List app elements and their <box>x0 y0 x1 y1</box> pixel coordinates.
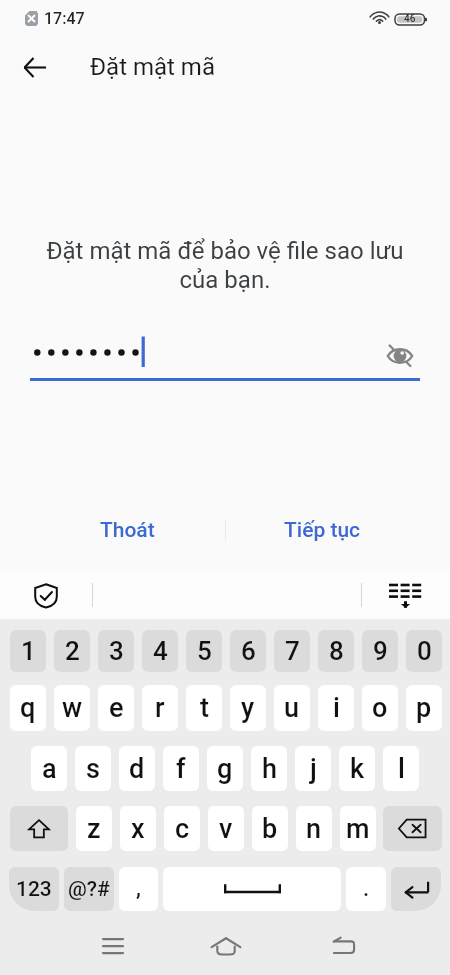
staticText: 6 <box>241 636 256 666</box>
staticText: n <box>306 813 322 845</box>
button[interactable]: 1 <box>10 630 46 672</box>
button[interactable]: Back <box>11 43 59 91</box>
staticText: 5 <box>197 636 212 666</box>
button[interactable]: Recent apps <box>83 916 143 975</box>
button[interactable]: 8 <box>318 630 354 672</box>
button[interactable]: n <box>296 806 332 851</box>
staticText: g <box>217 753 233 785</box>
staticText: p <box>416 692 432 724</box>
button[interactable]: p <box>406 685 442 731</box>
button[interactable]: j <box>295 746 331 791</box>
staticText: 9 <box>373 636 388 666</box>
button[interactable]: f <box>163 746 199 791</box>
button[interactable]: Show password <box>380 335 420 375</box>
button[interactable]: a <box>31 746 67 791</box>
staticText: i <box>333 692 340 724</box>
button[interactable]: Shift <box>10 806 68 851</box>
button[interactable]: c <box>164 806 200 851</box>
staticText: 7 <box>285 636 300 666</box>
staticText: 0 <box>417 636 432 666</box>
button[interactable]: o <box>362 685 398 731</box>
staticText: 8 <box>329 636 344 666</box>
button[interactable]: Secure input <box>28 577 64 613</box>
button[interactable]: h <box>251 746 287 791</box>
button[interactable]: 2 <box>54 630 90 672</box>
staticText: r <box>155 692 165 724</box>
staticText: h <box>262 753 277 785</box>
button[interactable]: t <box>186 685 222 731</box>
staticText: 1 <box>21 636 36 666</box>
staticText: j <box>310 753 317 785</box>
staticText: e <box>109 692 124 724</box>
button[interactable]: 7 <box>274 630 310 672</box>
button[interactable]: m <box>340 806 376 851</box>
staticText: 4 <box>153 636 168 666</box>
staticText: Thoát <box>100 518 155 543</box>
button[interactable]: z <box>76 806 112 851</box>
button[interactable]: v <box>208 806 244 851</box>
button[interactable]: Home <box>196 916 256 975</box>
staticText: q <box>20 692 36 724</box>
button[interactable]: g <box>207 746 243 791</box>
button[interactable]: Back <box>313 916 373 975</box>
button[interactable]: u <box>274 685 310 731</box>
button[interactable]: k <box>339 746 375 791</box>
button[interactable]: Hide keyboard <box>387 577 423 613</box>
button[interactable]: Tiếp tục <box>225 508 450 552</box>
staticText: m <box>346 813 370 845</box>
button[interactable]: q <box>10 685 46 731</box>
button[interactable]: s <box>75 746 111 791</box>
staticText: o <box>372 692 388 724</box>
staticText: 2 <box>65 636 80 666</box>
staticText: a <box>42 753 57 785</box>
button[interactable]: r <box>142 685 178 731</box>
staticText: z <box>87 813 101 845</box>
button[interactable]: 6 <box>230 630 266 672</box>
staticText: . <box>363 876 370 902</box>
staticText: u <box>284 692 300 724</box>
staticText: f <box>176 753 186 785</box>
staticText: @?# <box>68 877 110 902</box>
staticText: 123 <box>16 877 52 902</box>
button[interactable]: l <box>383 746 419 791</box>
button[interactable]: y <box>230 685 266 731</box>
button[interactable]: i <box>318 685 354 731</box>
button[interactable]: e <box>98 685 134 731</box>
button[interactable]: Backspace <box>383 806 442 851</box>
staticText: Đặt mật mã để bảo vệ file sao lưu của bạ… <box>24 237 426 294</box>
button[interactable]: b <box>252 806 288 851</box>
button[interactable]: 5 <box>186 630 222 672</box>
staticText: k <box>350 753 365 785</box>
button[interactable]: w <box>54 685 90 731</box>
staticText: l <box>398 753 405 785</box>
staticText: v <box>219 813 233 845</box>
staticText: 17:47 <box>44 9 85 28</box>
staticText: x <box>131 813 145 845</box>
staticText: y <box>241 692 255 724</box>
button[interactable]: 9 <box>362 630 398 672</box>
staticText: c <box>175 813 190 845</box>
button[interactable]: @?# <box>64 867 114 911</box>
button[interactable]: 0 <box>406 630 442 672</box>
staticText: b <box>262 813 278 845</box>
button[interactable]: d <box>119 746 155 791</box>
staticText: , <box>136 876 141 902</box>
button[interactable]: 3 <box>98 630 134 672</box>
button[interactable]: 123 <box>9 867 59 911</box>
button[interactable]: 4 <box>142 630 178 672</box>
staticText: w <box>62 692 83 724</box>
staticText: Tiếp tục <box>284 518 361 543</box>
staticText: 3 <box>109 636 124 666</box>
staticText: d <box>129 753 145 785</box>
button[interactable]: Thoát <box>0 508 225 552</box>
staticText: s <box>86 753 100 785</box>
button[interactable]: Space <box>163 867 341 911</box>
button[interactable]: . <box>346 867 386 911</box>
button[interactable]: , <box>119 867 158 911</box>
staticText: t <box>200 692 209 724</box>
staticText: Đặt mật mã <box>90 53 215 81</box>
button[interactable]: Enter <box>391 867 441 911</box>
staticText: 46 <box>404 13 416 25</box>
button[interactable]: x <box>120 806 156 851</box>
